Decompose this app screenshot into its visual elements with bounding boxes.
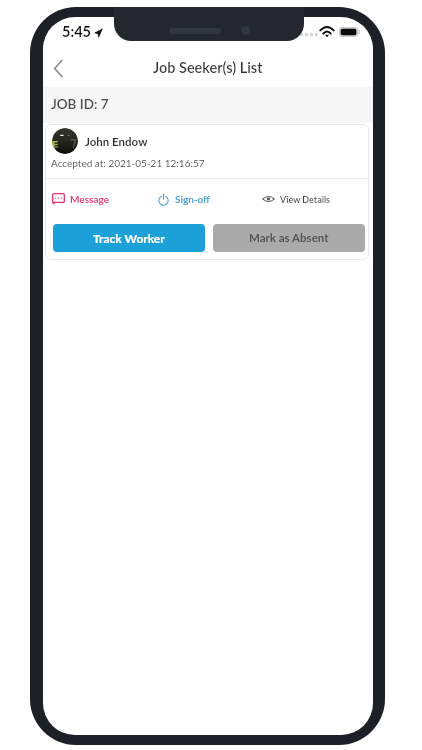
button[interactable]: Message <box>50 188 110 210</box>
button[interactable]: Back <box>43 53 73 83</box>
button[interactable]: Mark as Absent <box>213 224 365 252</box>
button[interactable]: Sign-off <box>155 188 210 210</box>
staticText: Message <box>70 193 110 205</box>
staticText: JOB ID: 7 <box>51 96 109 112</box>
staticText: Sign-off <box>175 193 210 205</box>
staticText: Track Worker <box>93 231 165 245</box>
staticText: Accepted at: 2021-05-21 12:16:57 <box>51 157 205 169</box>
staticText: View Details <box>280 194 331 205</box>
button[interactable]: View Details <box>260 188 331 210</box>
staticText: John Endow <box>85 135 148 149</box>
staticText: Job Seeker(s) List <box>153 59 263 76</box>
staticText: Mark as Absent <box>249 231 329 245</box>
staticText: 5:45 <box>62 23 91 40</box>
button[interactable]: Track Worker <box>53 224 205 252</box>
